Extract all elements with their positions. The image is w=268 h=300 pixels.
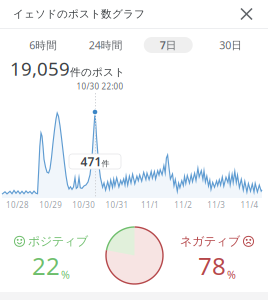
staticText: 471 bbox=[80, 153, 101, 169]
staticText: 件 bbox=[101, 159, 109, 168]
staticText: 10/30 22:00 bbox=[76, 81, 123, 92]
staticText: 30日 bbox=[219, 38, 242, 52]
staticText: 24時間 bbox=[89, 38, 123, 52]
staticText: 19,059 bbox=[10, 56, 70, 81]
staticText: ポジティブ bbox=[28, 234, 88, 249]
staticText: イェソドのポスト数グラフ bbox=[13, 7, 145, 20]
staticText: 22 bbox=[32, 250, 60, 282]
staticText: 10/30 bbox=[72, 200, 95, 210]
staticText: 11/2 bbox=[174, 200, 192, 210]
staticText: 78 bbox=[198, 250, 226, 282]
staticText: 11/1 bbox=[141, 200, 159, 210]
staticText: 件のポスト bbox=[70, 65, 125, 79]
staticText: % bbox=[61, 267, 70, 282]
button[interactable]: 24時間 bbox=[74, 32, 137, 58]
staticText: 10/31 bbox=[105, 200, 128, 210]
staticText: 6時間 bbox=[29, 38, 57, 52]
button[interactable]: 7日 bbox=[137, 32, 199, 58]
staticText: ネガティブ bbox=[180, 234, 240, 249]
button[interactable]: 6時間 bbox=[12, 32, 74, 58]
staticText: 11/3 bbox=[207, 200, 225, 210]
button[interactable]: 30日 bbox=[199, 32, 262, 58]
staticText: 7日 bbox=[160, 38, 177, 52]
staticText: 11/4 bbox=[240, 200, 258, 210]
button[interactable]: Close bbox=[235, 2, 258, 25]
staticText: 10/28 bbox=[6, 200, 29, 210]
staticText: 10/29 bbox=[39, 200, 62, 210]
staticText: % bbox=[227, 267, 236, 282]
